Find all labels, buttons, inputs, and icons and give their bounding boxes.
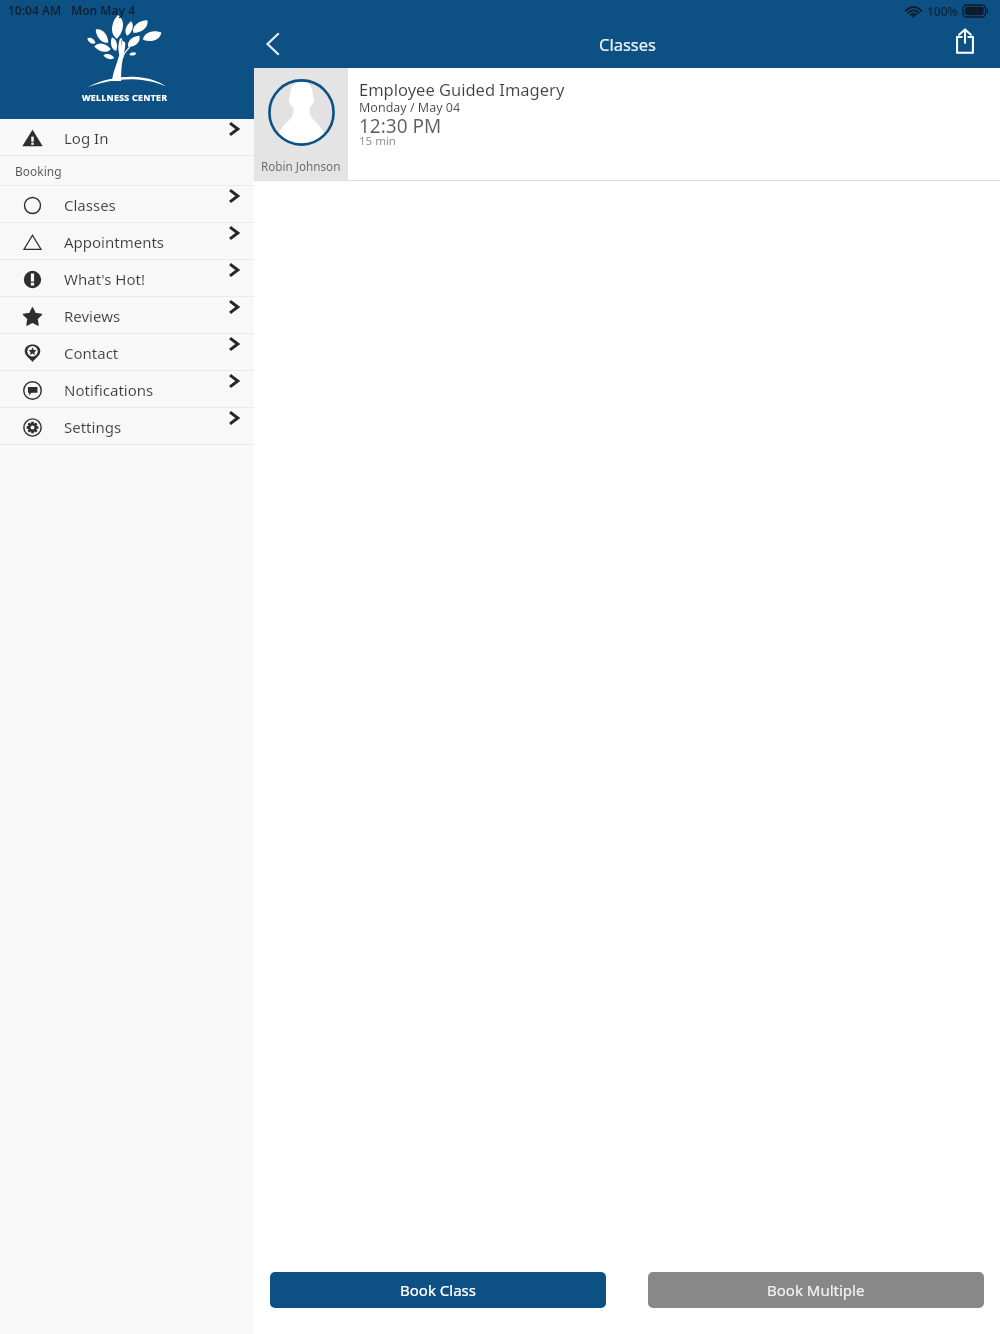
staticText: 10:04 AM: [8, 2, 62, 18]
staticText: Notifications: [64, 380, 154, 400]
staticText: 15 min: [359, 133, 396, 149]
staticText: 100%: [927, 3, 958, 19]
staticText: Monday / May 04: [359, 99, 461, 116]
staticText: Classes: [64, 195, 116, 215]
button[interactable]: Log In: [0, 119, 254, 156]
button[interactable]: Reviews: [0, 297, 254, 334]
button[interactable]: Classes: [0, 186, 254, 223]
staticText: Classes: [599, 33, 656, 55]
staticText: Booking: [15, 163, 62, 179]
staticText: Book Multiple: [767, 1280, 865, 1300]
button[interactable]: Robin Johnson: [254, 68, 1000, 181]
button[interactable]: Settings: [0, 408, 254, 445]
button[interactable]: What's Hot!: [0, 260, 254, 297]
button[interactable]: Back: [252, 24, 292, 64]
staticText: 12:30 PM: [359, 113, 442, 139]
staticText: Contact: [64, 343, 119, 363]
staticText: Robin Johnson: [261, 158, 341, 174]
staticText: Employee Guided Imagery: [359, 78, 565, 100]
button[interactable]: Book Class: [270, 1272, 606, 1308]
button[interactable]: Book Multiple: [648, 1272, 984, 1308]
staticText: Appointments: [64, 232, 165, 252]
staticText: Log In: [64, 128, 109, 148]
button[interactable]: Share: [945, 21, 985, 61]
staticText: Settings: [64, 417, 122, 437]
staticText: Book Class: [400, 1280, 476, 1300]
staticText: What's Hot!: [64, 269, 146, 289]
staticText: Mon May 4: [71, 2, 136, 18]
button[interactable]: Notifications: [0, 371, 254, 408]
staticText: Reviews: [64, 306, 121, 326]
button[interactable]: Contact: [0, 334, 254, 371]
button[interactable]: Appointments: [0, 223, 254, 260]
staticText: WELLNESS CENTER: [82, 92, 168, 104]
